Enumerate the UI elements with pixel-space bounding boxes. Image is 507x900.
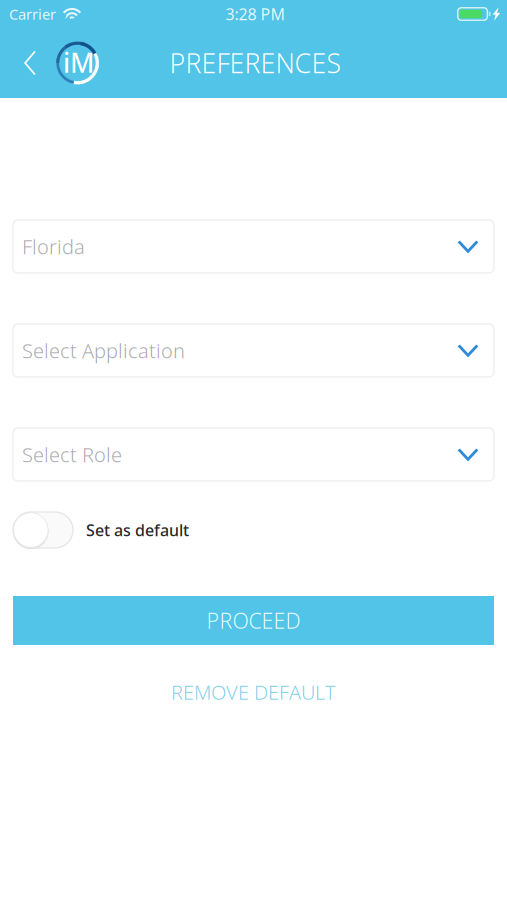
- button[interactable]: Florida: [13, 220, 494, 273]
- staticText: Carrier: [9, 4, 56, 24]
- staticText: Select Role: [22, 441, 122, 468]
- staticText: PREFERENCES: [169, 45, 341, 81]
- button[interactable]: Select Role: [13, 428, 494, 481]
- button[interactable]: Select Application: [13, 324, 494, 377]
- staticText: REMOVE DEFAULT: [171, 679, 336, 705]
- button[interactable]: Set as default: [13, 512, 73, 548]
- staticText: 3:28 PM: [225, 3, 285, 25]
- staticText: PROCEED: [206, 606, 300, 635]
- button[interactable]: PROCEED: [13, 596, 494, 645]
- staticText: iM: [63, 45, 94, 80]
- staticText: Set as default: [86, 519, 189, 541]
- button[interactable]: Back: [12, 39, 56, 87]
- staticText: Select Application: [22, 337, 185, 364]
- staticText: Florida: [22, 233, 85, 260]
- button[interactable]: REMOVE DEFAULT: [13, 674, 494, 710]
